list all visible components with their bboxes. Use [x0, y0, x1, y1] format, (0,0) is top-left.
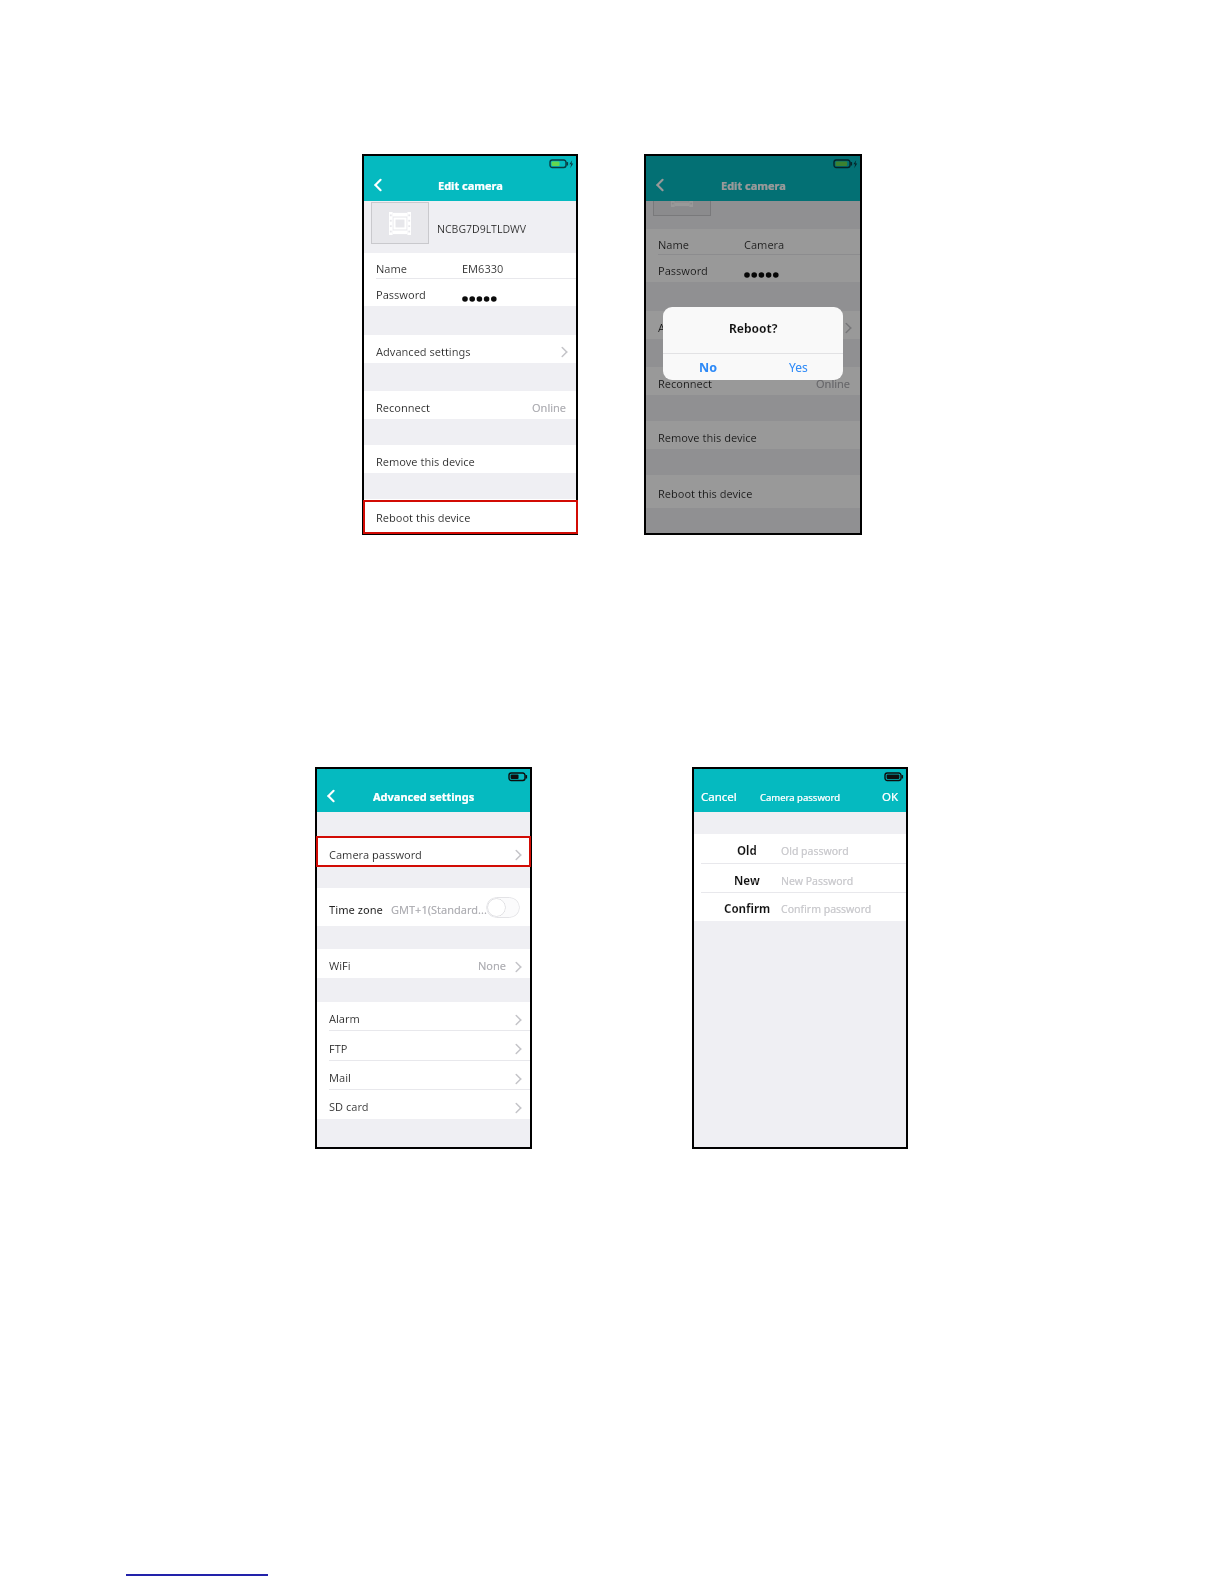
staticText: WiFi [329, 958, 351, 973]
button[interactable]: Remove this device [364, 445, 576, 473]
staticText: Name [376, 261, 408, 276]
staticText: Edit camera [721, 178, 786, 193]
staticText: Yes [789, 359, 808, 375]
staticText: No [699, 359, 717, 376]
staticText: New Password [781, 874, 854, 888]
button[interactable]: New [694, 864, 906, 893]
staticText: Old [737, 843, 757, 859]
staticText: Remove this device [376, 454, 475, 469]
button[interactable]: Advanced settings [646, 311, 860, 339]
button[interactable]: No [663, 354, 753, 380]
button[interactable]: Back [364, 169, 391, 201]
button[interactable]: WiFi [317, 949, 530, 978]
button[interactable]: Password [646, 255, 860, 282]
staticText: Reconnect [658, 376, 713, 391]
staticText: Advanced settings [373, 789, 475, 804]
staticText: Alarm [329, 1011, 360, 1026]
staticText: OK [882, 789, 899, 805]
button[interactable]: Reconnect [646, 367, 860, 395]
staticText: Reboot? [729, 320, 778, 336]
staticText: Name [658, 237, 690, 252]
button[interactable]: Reboot this device [646, 475, 860, 508]
staticText: Reboot this device [658, 486, 753, 501]
staticText: Camera password [329, 847, 422, 862]
staticText: Password [376, 287, 426, 302]
button[interactable]: Advanced settings [364, 335, 576, 363]
staticText: Camera password [760, 791, 841, 804]
staticText: Confirm [724, 901, 771, 917]
button[interactable]: FTP [317, 1031, 530, 1061]
staticText: None [478, 958, 507, 973]
button[interactable]: OK [882, 782, 906, 812]
button[interactable]: Password [364, 279, 576, 306]
button[interactable]: Name [364, 253, 576, 279]
staticText: Reconnect [376, 400, 431, 415]
staticText: Password [658, 263, 708, 278]
button[interactable]: SD card [317, 1090, 530, 1119]
staticText: Edit camera [438, 178, 503, 193]
staticText: Advanced settings [658, 320, 753, 335]
button[interactable]: Name [646, 229, 860, 255]
button[interactable]: Yes [753, 354, 843, 380]
staticText: Advanced settings [376, 344, 471, 359]
button[interactable]: Reboot this device [364, 499, 576, 532]
staticText: SD card [329, 1099, 369, 1114]
staticText: Confirm password [781, 902, 872, 916]
button[interactable]: Alarm [317, 1002, 530, 1031]
staticText: EM6330 [462, 261, 504, 276]
staticText: Old password [781, 844, 849, 858]
staticText: Online [816, 376, 851, 391]
button[interactable]: Remove this device [646, 421, 860, 449]
staticText: Remove this device [658, 430, 757, 445]
staticText: Online [532, 400, 567, 415]
staticText: Mail [329, 1070, 351, 1085]
button[interactable]: Back [646, 169, 673, 201]
staticText: FTP [329, 1041, 348, 1056]
staticText: Camera [744, 237, 785, 252]
button[interactable]: Cancel [694, 782, 737, 812]
staticText: Cancel [701, 789, 737, 805]
button[interactable]: Mail [317, 1061, 530, 1090]
staticText: Reboot this device [376, 510, 471, 525]
staticText: Time zone [329, 902, 383, 917]
button[interactable]: Camera password [317, 838, 530, 866]
button[interactable]: Old [694, 834, 906, 864]
button[interactable]: Confirm [694, 893, 906, 921]
button[interactable]: Reconnect [364, 391, 576, 419]
staticText: New [734, 873, 760, 889]
button[interactable]: Back [317, 780, 344, 812]
button[interactable]: Time zone [317, 888, 530, 926]
staticText: GMT+1(Standard... [391, 902, 487, 917]
staticText: NCBG7D9LTLDWV [437, 222, 527, 236]
